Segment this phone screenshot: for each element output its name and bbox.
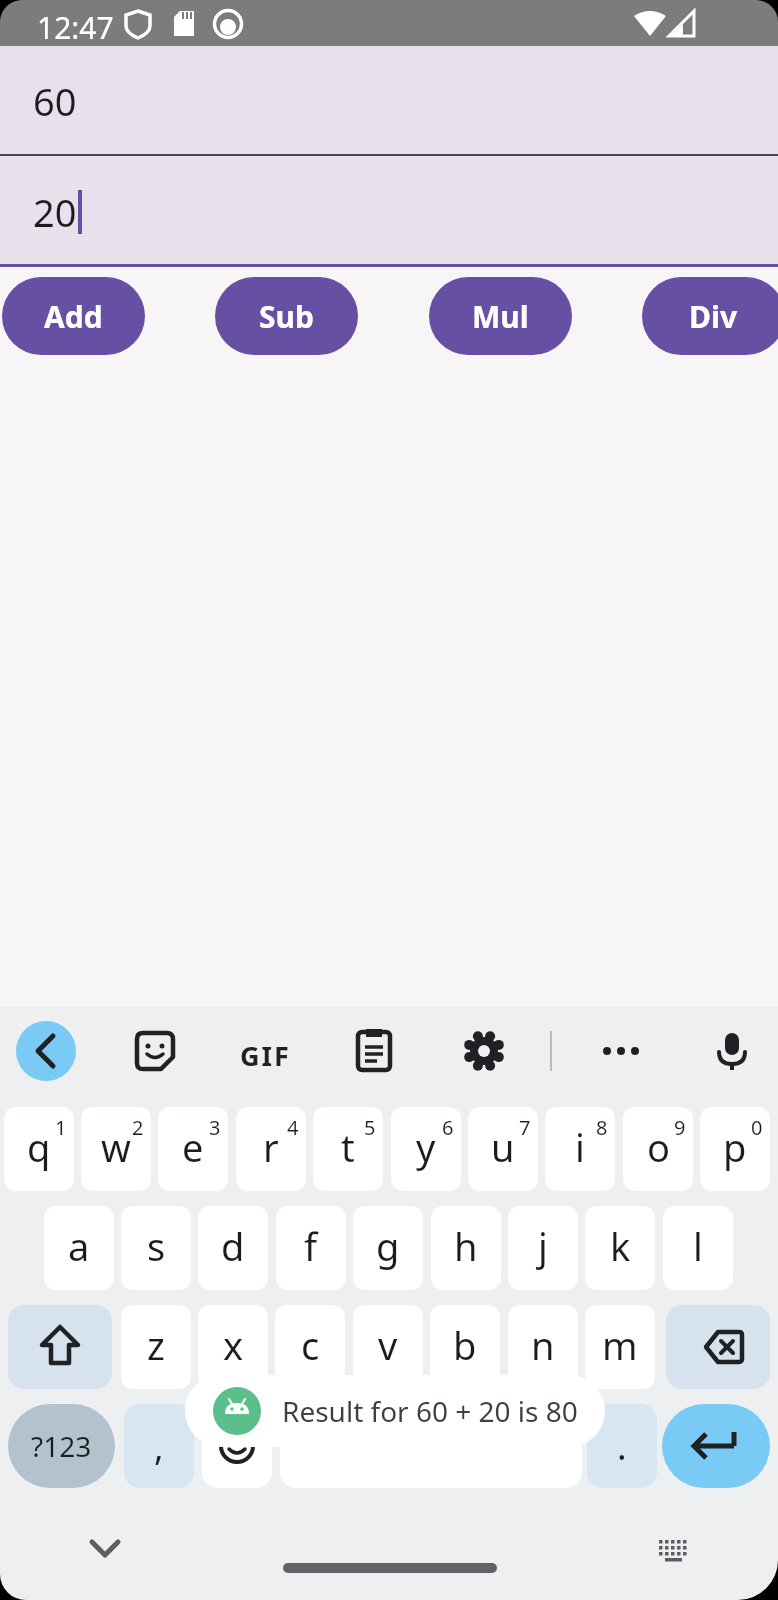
button[interactable]: o xyxy=(623,1107,693,1191)
staticText: Mul xyxy=(472,296,529,337)
staticText: t xyxy=(341,1121,355,1173)
button[interactable] xyxy=(344,1021,404,1081)
staticText: d xyxy=(221,1220,245,1272)
button[interactable]: Result for 60 + 20 is 80 xyxy=(185,1375,605,1447)
button[interactable] xyxy=(16,1021,76,1081)
button[interactable]: m xyxy=(585,1305,655,1389)
staticText: b xyxy=(453,1319,477,1371)
button[interactable]: 60 xyxy=(0,46,778,156)
staticText: 4 xyxy=(287,1114,299,1141)
button[interactable]: d xyxy=(198,1206,268,1290)
button[interactable]: b xyxy=(430,1305,500,1389)
staticText: 5 xyxy=(364,1114,376,1141)
button[interactable]: y xyxy=(391,1107,461,1191)
staticText: 7 xyxy=(519,1114,531,1141)
staticText: Div xyxy=(689,296,738,337)
button[interactable]: j xyxy=(508,1206,578,1290)
button[interactable]: k xyxy=(585,1206,655,1290)
button[interactable]: t xyxy=(313,1107,383,1191)
staticText: s xyxy=(147,1220,166,1272)
button[interactable]: z xyxy=(121,1305,191,1389)
button[interactable]: q xyxy=(4,1107,74,1191)
staticText: x xyxy=(223,1319,244,1371)
staticText: o xyxy=(647,1121,670,1173)
button[interactable]: x xyxy=(198,1305,268,1389)
staticText: , xyxy=(154,1422,164,1471)
staticText: m xyxy=(602,1319,638,1371)
button[interactable]: s xyxy=(121,1206,191,1290)
button[interactable]: a xyxy=(44,1206,114,1290)
staticText: Add xyxy=(44,296,103,337)
staticText: q xyxy=(27,1121,51,1173)
button[interactable] xyxy=(591,1021,651,1081)
button[interactable]: u xyxy=(468,1107,538,1191)
staticText: y xyxy=(416,1121,436,1173)
staticText: h xyxy=(454,1220,478,1272)
staticText: u xyxy=(491,1121,515,1173)
button[interactable] xyxy=(280,1404,582,1488)
button[interactable] xyxy=(702,1021,762,1081)
staticText: 1 xyxy=(55,1114,67,1141)
staticText: Result for 60 + 20 is 80 xyxy=(282,1392,578,1430)
staticText: 3 xyxy=(209,1114,221,1141)
staticText: 9 xyxy=(674,1114,686,1141)
button[interactable]: n xyxy=(508,1305,578,1389)
button[interactable]: , xyxy=(124,1404,194,1488)
button[interactable]: p xyxy=(700,1107,770,1191)
button[interactable]: i xyxy=(545,1107,615,1191)
staticText: f xyxy=(304,1220,318,1272)
button[interactable]: Div xyxy=(642,277,778,355)
button[interactable]: r xyxy=(236,1107,306,1191)
staticText: i xyxy=(575,1121,585,1173)
button[interactable] xyxy=(662,1404,770,1488)
button[interactable] xyxy=(666,1305,770,1389)
staticText: 2 xyxy=(132,1114,144,1141)
button[interactable]: c xyxy=(275,1305,345,1389)
staticText: 20 xyxy=(33,186,77,238)
staticText: . xyxy=(617,1422,627,1471)
staticText: z xyxy=(147,1319,165,1371)
button[interactable]: Mul xyxy=(429,277,572,355)
staticText: p xyxy=(723,1121,747,1173)
button[interactable]: w xyxy=(81,1107,151,1191)
staticText: Sub xyxy=(259,296,314,337)
button[interactable] xyxy=(202,1404,272,1488)
staticText: n xyxy=(531,1319,555,1371)
staticText: e xyxy=(182,1121,204,1173)
button[interactable]: v xyxy=(353,1305,423,1389)
staticText: j xyxy=(538,1220,548,1272)
button[interactable]: Add xyxy=(2,277,145,355)
button[interactable] xyxy=(125,1021,185,1081)
button[interactable]: e xyxy=(158,1107,228,1191)
staticText: l xyxy=(693,1220,703,1272)
staticText: a xyxy=(68,1220,90,1272)
button[interactable]: l xyxy=(663,1206,733,1290)
button[interactable] xyxy=(454,1021,514,1081)
staticText: k xyxy=(610,1220,631,1272)
staticText: w xyxy=(101,1121,131,1173)
button[interactable]: 20 xyxy=(0,156,778,267)
button[interactable]: ?123 xyxy=(8,1404,115,1488)
staticText: GIF xyxy=(240,1037,291,1074)
staticText: 60 xyxy=(33,75,77,127)
button[interactable]: g xyxy=(353,1206,423,1290)
button[interactable] xyxy=(8,1305,112,1389)
button[interactable]: f xyxy=(276,1206,346,1290)
staticText: g xyxy=(376,1220,400,1272)
button[interactable]: Sub xyxy=(215,277,358,355)
staticText: 6 xyxy=(442,1114,454,1141)
staticText: r xyxy=(263,1121,279,1173)
button[interactable]: h xyxy=(431,1206,501,1290)
staticText: v xyxy=(378,1319,398,1371)
staticText: 0 xyxy=(751,1114,763,1141)
button[interactable] xyxy=(233,1021,293,1081)
staticText: 8 xyxy=(596,1114,608,1141)
staticText: c xyxy=(301,1319,320,1371)
staticText: 12:47 xyxy=(37,7,114,48)
button[interactable]: . xyxy=(587,1404,657,1488)
staticText: ?123 xyxy=(31,1427,92,1465)
